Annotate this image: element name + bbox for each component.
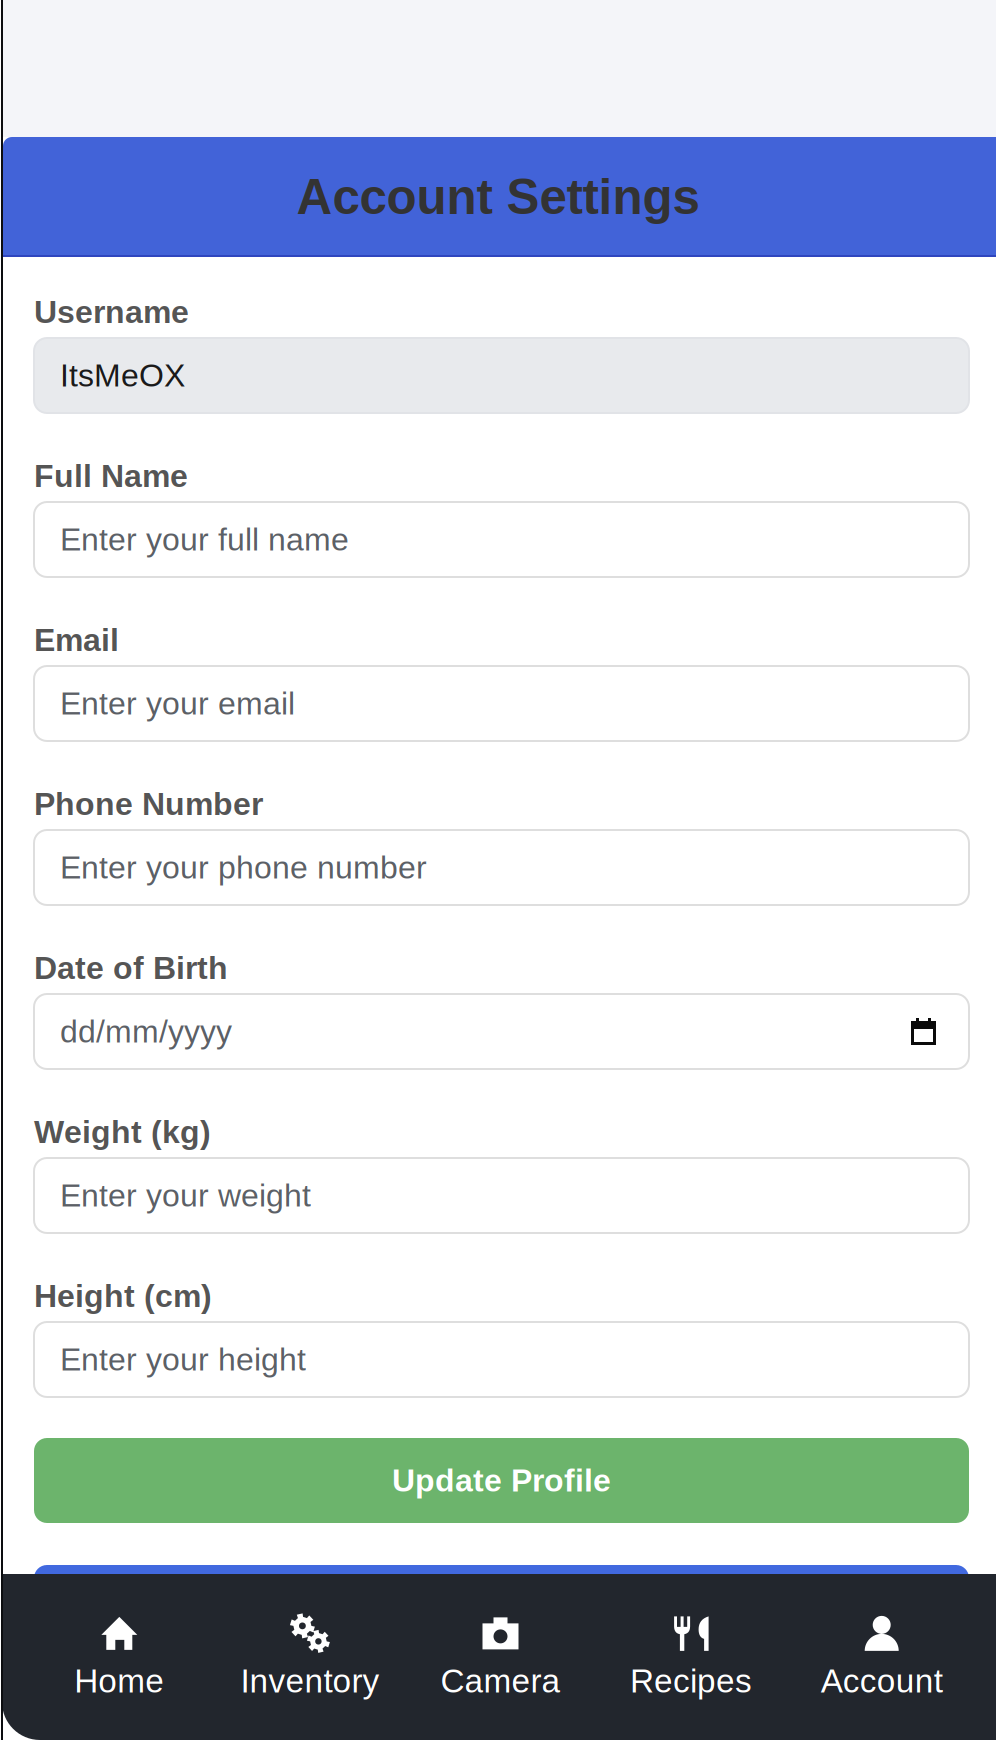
button[interactable]: Enter your weight — [34, 1158, 969, 1233]
button[interactable]: Enter your phone number — [34, 830, 969, 905]
button[interactable]: Recipes — [596, 1574, 786, 1740]
staticText: Camera — [440, 1662, 560, 1700]
staticText: Username — [34, 294, 189, 330]
staticText: dd/mm/yyyy — [60, 1014, 232, 1049]
staticText: Enter your email — [60, 686, 295, 721]
button[interactable]: Inventory — [215, 1574, 405, 1740]
button[interactable]: Update Profile — [34, 1438, 969, 1523]
staticText: Enter your phone number — [60, 850, 427, 885]
staticText: Delete Account — [384, 1590, 619, 1625]
button[interactable]: Enter your email — [34, 666, 969, 741]
staticText: Date of Birth — [34, 950, 228, 986]
staticText: Phone Number — [34, 786, 263, 822]
staticText: Height (cm) — [34, 1278, 212, 1314]
button[interactable]: Enter your height — [34, 1322, 969, 1397]
button[interactable]: dd/mm/yyyy — [34, 994, 969, 1069]
button[interactable]: Camera — [405, 1574, 596, 1740]
staticText: Update Profile — [392, 1463, 611, 1498]
staticText: Email — [34, 622, 119, 658]
staticText: ItsMeOX — [60, 358, 185, 393]
button[interactable]: Enter your full name — [34, 502, 969, 577]
staticText: Full Name — [34, 458, 188, 494]
staticText: Account Settings — [296, 169, 699, 224]
button[interactable]: Delete Account — [34, 1565, 969, 1650]
staticText: Enter your weight — [60, 1178, 311, 1213]
staticText: Enter your full name — [60, 522, 349, 557]
staticText: Inventory — [240, 1662, 379, 1700]
button[interactable]: Home — [24, 1574, 215, 1740]
button[interactable]: ItsMeOX — [34, 338, 969, 413]
staticText: Account — [821, 1662, 943, 1700]
staticText: Weight (kg) — [34, 1114, 211, 1150]
staticText: Enter your height — [60, 1342, 306, 1377]
staticText: Home — [74, 1662, 164, 1700]
button[interactable]: Account — [786, 1574, 977, 1740]
staticText: Recipes — [630, 1662, 752, 1700]
